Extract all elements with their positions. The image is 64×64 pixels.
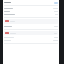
button[interactable]: Title	[4, 1, 58, 4]
button[interactable]	[4, 39, 58, 42]
button[interactable]	[4, 31, 58, 35]
button[interactable]	[4, 10, 58, 13]
button[interactable]	[4, 7, 58, 10]
button[interactable]	[4, 13, 58, 16]
button[interactable]	[4, 36, 58, 39]
button[interactable]	[4, 25, 58, 28]
button[interactable]	[4, 19, 58, 24]
button[interactable]: Status	[54, 2, 58, 4]
